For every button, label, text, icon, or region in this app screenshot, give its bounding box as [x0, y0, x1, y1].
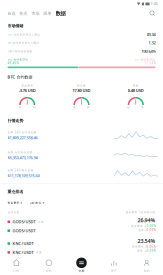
staticText: 持仓量: [77, 84, 86, 87]
staticText: KNC/USDT: [12, 241, 33, 246]
button[interactable]: 热点: [19, 11, 27, 16]
staticText: GODS/USDT: [12, 228, 35, 233]
button[interactable]: 资金费率 ▾: [7, 201, 21, 204]
staticText: 100.64%: [141, 48, 155, 54]
button[interactable]: GODS/USDT: [0, 224, 95, 233]
staticText: 全网 合约持仓总量: [7, 151, 32, 154]
staticText: 高: [33, 106, 36, 109]
staticText: 全网 24H 爆仓总额: [7, 169, 33, 172]
staticText: ETH 合约多空持仓人数比: [7, 41, 39, 45]
staticText: 高: [87, 106, 90, 109]
staticText: +0.09%: [144, 249, 155, 252]
staticText: $5,353,473,176.94: [7, 155, 37, 160]
staticText: 数据: [55, 10, 65, 17]
staticText: 永续: [38, 220, 44, 223]
staticText: 17.80 USD: [72, 88, 90, 93]
staticText: USDT 场外溢价指数: [7, 49, 32, 53]
staticText: 资金费率: [21, 84, 33, 87]
staticText: -0.09%: [145, 228, 155, 232]
staticText: 0.48 USD: [128, 88, 144, 93]
staticText: 26.94%: [137, 217, 155, 224]
button[interactable]: GODS/USDT: [0, 214, 95, 224]
staticText: 市场: [31, 11, 39, 16]
staticText: 1.32: [148, 40, 155, 45]
staticText: 资金费率 / 结算倒计时: [125, 211, 155, 214]
staticText: KNC/USDT: [12, 250, 33, 255]
button[interactable]: 市场: [31, 11, 39, 16]
staticText: 自选: [7, 11, 15, 16]
staticText: 资金费率: [132, 245, 144, 248]
staticText: 行情走势: [7, 118, 23, 123]
staticText: BTC 合约多空持仓人数比: [7, 33, 40, 36]
button[interactable]: 交易: [65, 255, 98, 275]
staticText: +0.06%: [144, 224, 155, 228]
staticText: 跟单: [43, 11, 51, 16]
staticText: 1:35: [151, 2, 158, 6]
staticText: 基差: [133, 84, 139, 87]
button[interactable]: 跟单: [43, 11, 51, 16]
staticText: 交易: [78, 269, 84, 273]
staticText: 资金费率: [131, 224, 143, 228]
staticText: 市场情绪: [7, 23, 23, 28]
staticText: 合约名称: [7, 211, 19, 214]
staticText: $1,809,227,558.46: [7, 135, 37, 140]
button[interactable]: KNC/USDT: [0, 246, 95, 255]
staticText: -0.06%: [145, 245, 155, 248]
staticText: 资金费率 ▾: [7, 201, 21, 204]
staticText: 行情: [13, 269, 19, 273]
staticText: 51.54%: [144, 61, 155, 65]
staticText: 低: [73, 106, 76, 109]
staticText: 48.46%: [7, 61, 18, 65]
staticText: 23.54%: [137, 237, 155, 244]
staticText: 49.34: [146, 32, 155, 37]
staticText: 热点: [19, 11, 27, 16]
staticText: 高: [141, 106, 144, 109]
button[interactable]: USDT本位 ▾: [29, 201, 43, 205]
staticText: 低: [127, 106, 130, 109]
staticText: BTC 合约多空比: [134, 58, 155, 61]
staticText: 全网 24H 合约成交额: [7, 131, 36, 134]
staticText: $11,178,109,515.60: [7, 173, 39, 178]
staticText: USDT本位 ▾: [29, 201, 43, 205]
staticText: 合约: [46, 269, 52, 273]
staticText: 重仓排名: [7, 189, 23, 194]
staticText: 资产: [111, 269, 117, 273]
staticText: 我的: [144, 269, 150, 273]
button[interactable]: 行情: [0, 255, 33, 275]
staticText: BTC 合约多空比: [7, 58, 28, 61]
staticText: 低: [19, 106, 22, 109]
staticText: 溢价: [137, 249, 143, 252]
staticText: BTC 合约数据: [7, 74, 32, 79]
staticText: 永续: [36, 251, 42, 254]
button[interactable]: 搜索: [147, 8, 157, 18]
button[interactable]: 自选: [7, 11, 15, 16]
staticText: -3.76 USD: [19, 88, 36, 93]
button[interactable]: 合约: [33, 255, 65, 275]
staticText: 溢价: [138, 228, 144, 232]
button[interactable]: 数据: [55, 10, 65, 17]
button[interactable]: KNC/USDT: [0, 233, 95, 246]
button[interactable]: 资产: [98, 255, 130, 275]
staticText: GODS/USDT: [12, 219, 35, 224]
button[interactable]: 我的: [130, 255, 163, 275]
